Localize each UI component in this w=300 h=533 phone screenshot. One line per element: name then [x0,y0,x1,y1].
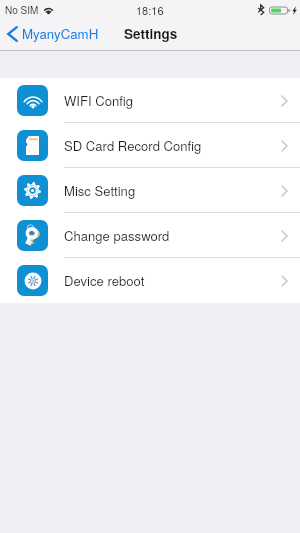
button[interactable]: WIFI Config [0,78,300,123]
staticText: Misc Setting [64,181,136,200]
button[interactable]: Device reboot [0,258,300,303]
staticText: MyanyCamH [22,24,99,43]
button[interactable]: Change password [0,213,300,258]
button[interactable]: Misc Setting [0,168,300,213]
staticText: SD Card Record Config [64,136,202,155]
button[interactable]: SD Card Record Config [0,123,300,168]
staticText: WIFI Config [64,91,134,110]
staticText: Device reboot [64,271,145,290]
button[interactable]: MyanyCamH [0,23,107,48]
staticText: Settings [124,24,178,43]
staticText: 18:16 [136,2,164,18]
staticText: No SIM [5,3,39,17]
staticText: Change password [64,226,170,245]
